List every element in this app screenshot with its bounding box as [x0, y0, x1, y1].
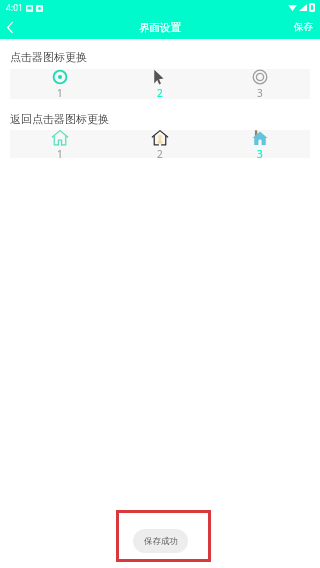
staticText: 1 — [57, 147, 63, 158]
button[interactable]: 返回图标 2 — [110, 130, 210, 158]
staticText: 3 — [257, 86, 263, 99]
button[interactable]: 返回图标 1 — [10, 130, 110, 158]
staticText: 1 — [57, 86, 63, 99]
staticText: 界面设置 — [139, 21, 181, 34]
staticText: 返回点击器图标更换 — [10, 112, 109, 126]
button[interactable]: 点击器图标 1 — [10, 69, 110, 99]
staticText: 点击器图标更换 — [10, 50, 87, 64]
staticText: 3 — [257, 147, 263, 158]
staticText: 2 — [157, 86, 163, 99]
button[interactable]: 保存 — [287, 15, 320, 39]
staticText: 2 — [157, 147, 163, 158]
staticText: 4:01 — [6, 2, 23, 14]
staticText: 保存成功 — [144, 536, 178, 547]
staticText: 保存 — [294, 21, 313, 33]
button[interactable]: 点击器图标 2 — [110, 69, 210, 99]
button[interactable]: 返回图标 3 — [210, 130, 310, 158]
button[interactable]: 点击器图标 3 — [210, 69, 310, 99]
button[interactable]: 返回 — [0, 15, 20, 39]
